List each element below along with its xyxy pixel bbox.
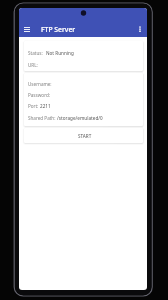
- staticText: Shared Path:: [28, 115, 56, 121]
- button[interactable]: START: [24, 128, 143, 143]
- staticText: URL:: [28, 62, 38, 68]
- staticText: Not Running: [46, 50, 74, 56]
- staticText: Port:: [28, 103, 39, 109]
- staticText: START: [78, 133, 92, 139]
- staticText: Password:: [28, 92, 51, 98]
- button[interactable]: More options: [133, 22, 147, 36]
- staticText: 2211: [40, 103, 51, 109]
- staticText: /storage/emulated/0: [57, 115, 103, 121]
- staticText: Username:: [28, 81, 52, 87]
- staticText: Status:: [28, 50, 43, 56]
- button[interactable]: Open navigation menu: [20, 22, 34, 36]
- staticText: FTP Server: [41, 25, 76, 34]
